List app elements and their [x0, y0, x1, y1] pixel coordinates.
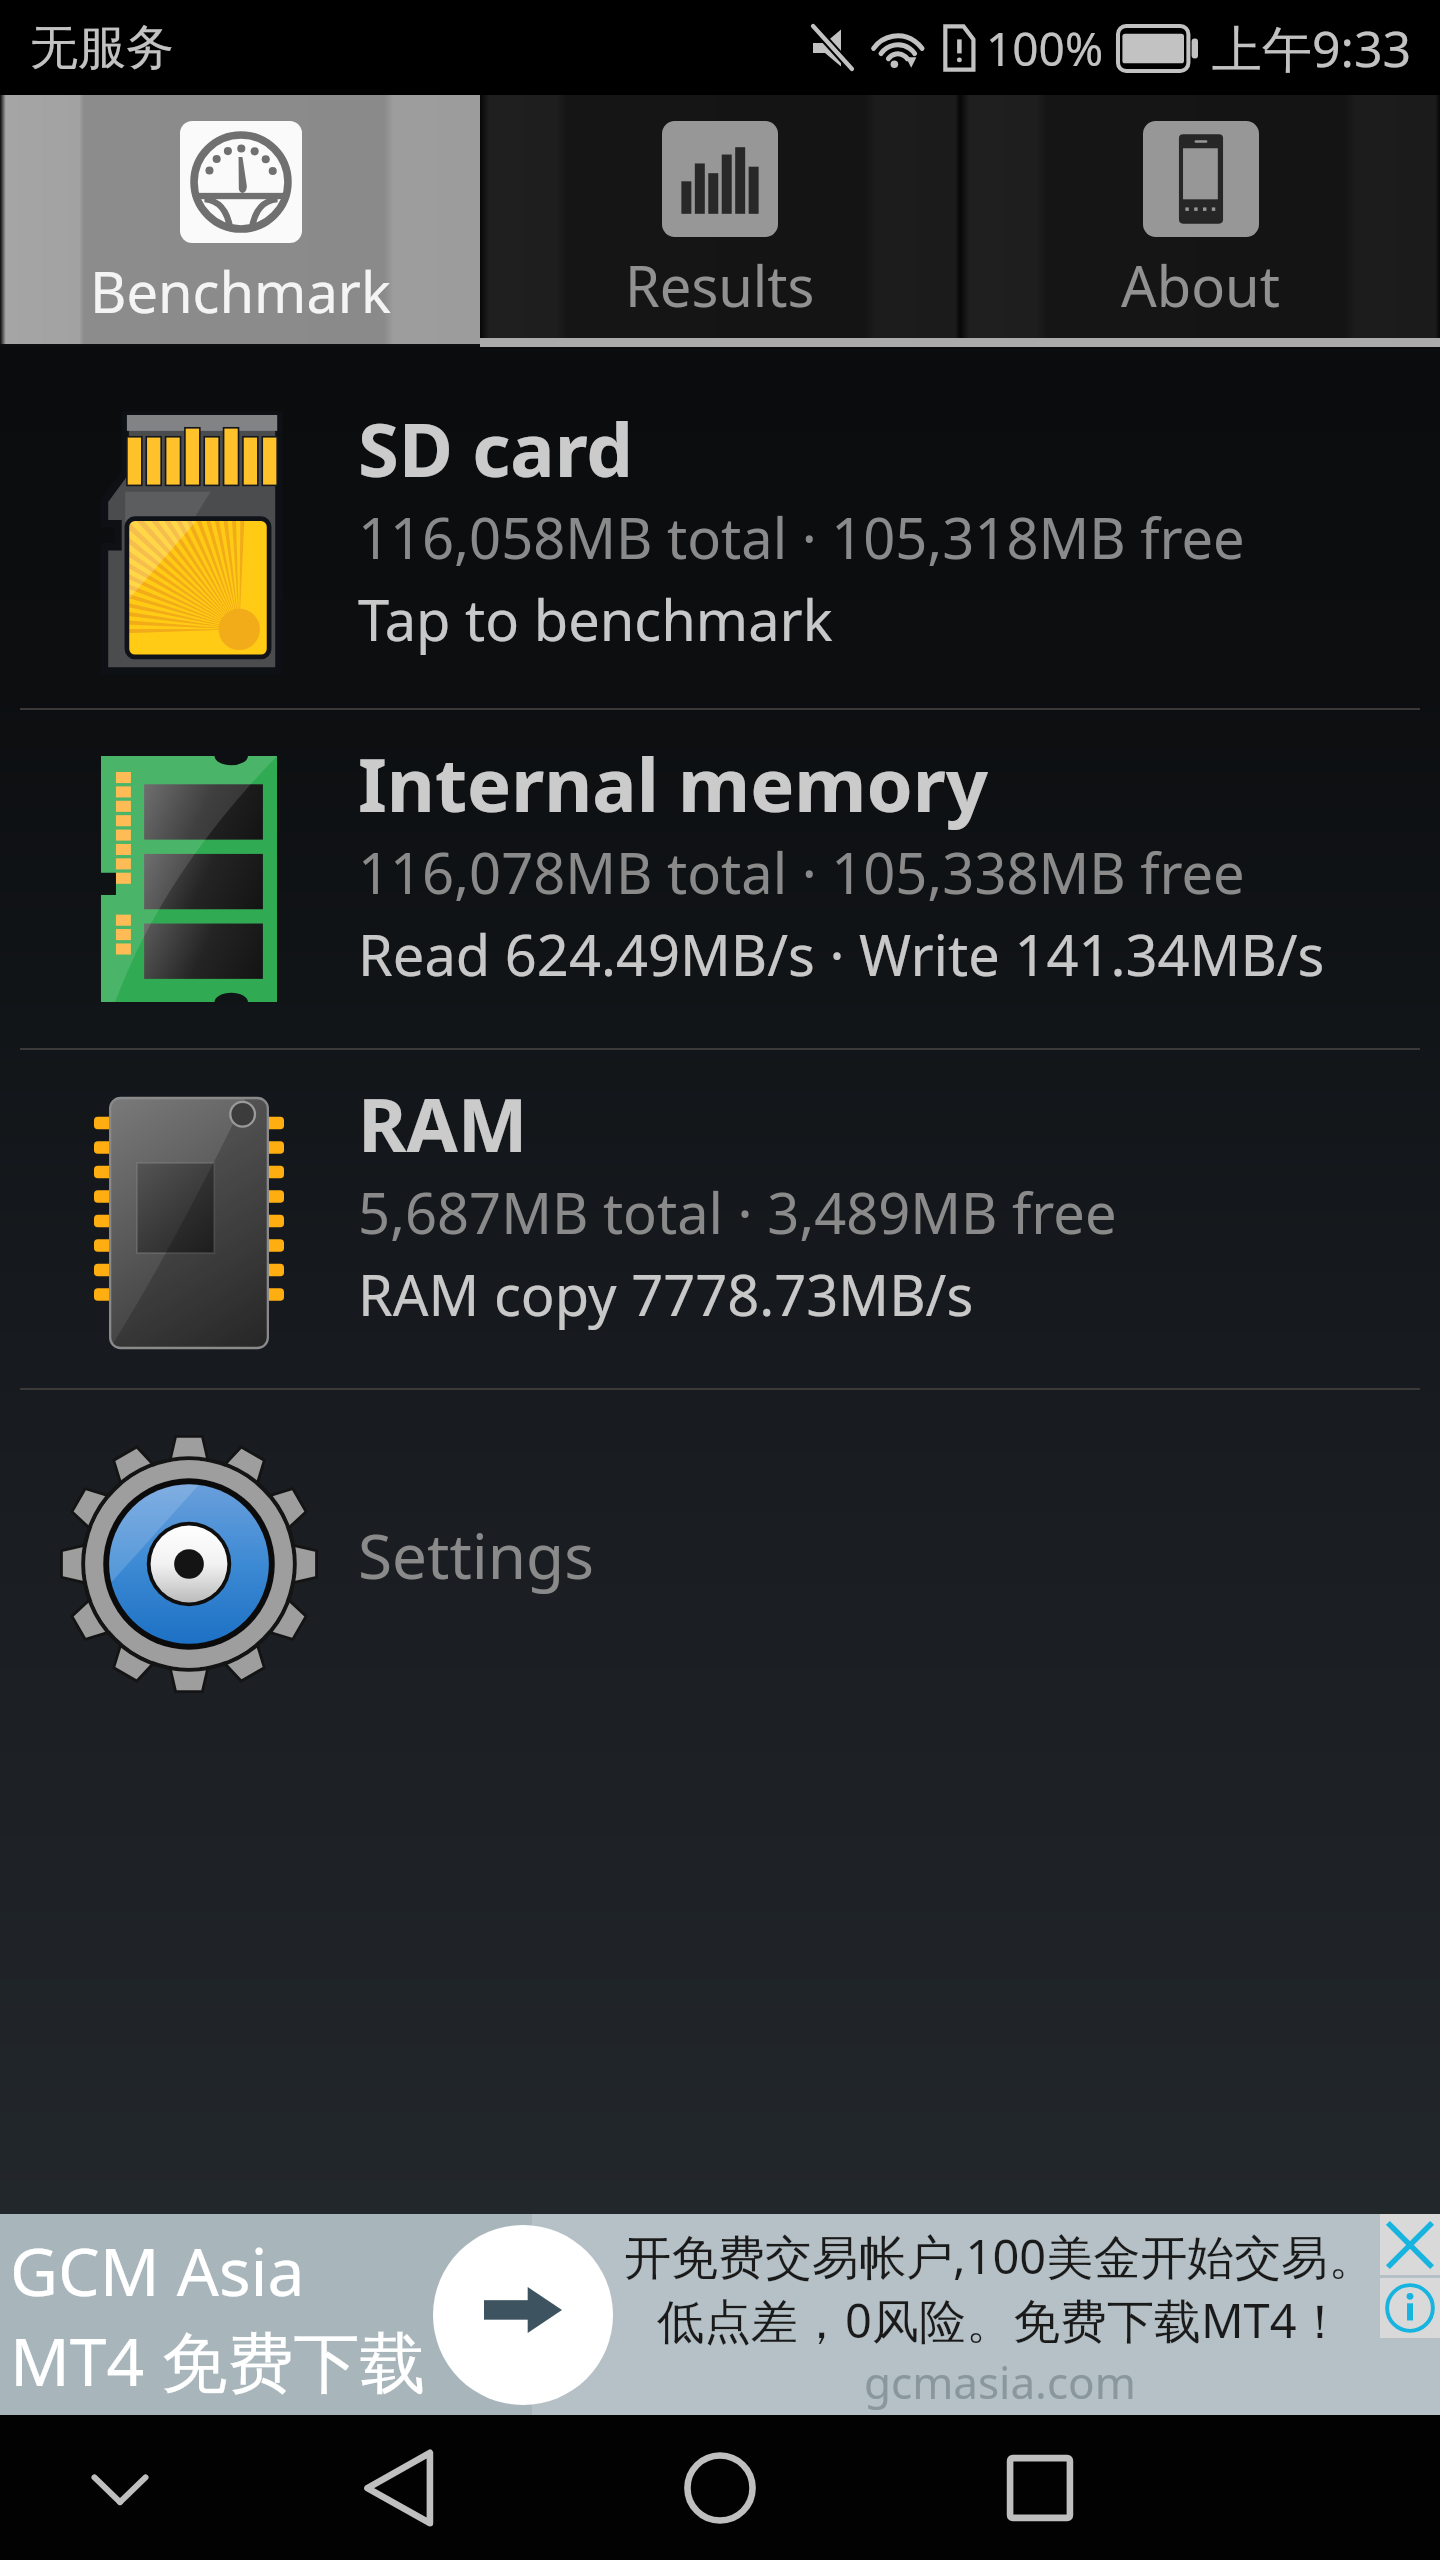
- staticText: Tap to benchmark: [358, 581, 833, 657]
- button[interactable]: Home: [660, 2428, 780, 2548]
- staticText: Internal memory: [358, 733, 989, 834]
- staticText: 开免费交易帐户,100美金开始交易。: [624, 2224, 1376, 2288]
- button[interactable]: RAM: [0, 1050, 1440, 1388]
- staticText: RAM: [358, 1073, 528, 1174]
- button[interactable]: GCM Asia advertisement: [0, 2214, 1440, 2415]
- staticText: 无服务: [30, 18, 174, 78]
- button[interactable]: SD card: [0, 347, 1440, 708]
- staticText: 5,687MB total · 3,489MB free: [358, 1174, 1117, 1250]
- staticText: SD card: [358, 398, 634, 499]
- staticText: Benchmark: [90, 253, 391, 329]
- button[interactable]: About: [960, 95, 1440, 344]
- staticText: 低点差，0风险。免费下载MT4！: [657, 2288, 1344, 2352]
- button[interactable]: Recents: [980, 2428, 1100, 2548]
- staticText: Read 624.49MB/s · Write 141.34MB/s: [358, 916, 1325, 992]
- staticText: 116,058MB total · 105,318MB free: [358, 499, 1245, 575]
- staticText: gcmasia.com: [864, 2352, 1136, 2412]
- staticText: 100%: [986, 17, 1104, 80]
- staticText: About: [1121, 247, 1280, 323]
- button[interactable]: Settings: [0, 1390, 1440, 1720]
- staticText: Settings: [358, 1513, 594, 1597]
- button[interactable]: Ad info: [1380, 2278, 1440, 2338]
- staticText: GCM Asia: [10, 2225, 305, 2315]
- button[interactable]: Results: [480, 95, 960, 344]
- button[interactable]: Benchmark: [0, 95, 480, 344]
- staticText: 116,078MB total · 105,338MB free: [358, 834, 1245, 910]
- button[interactable]: Back: [340, 2428, 460, 2548]
- button[interactable]: Close ad: [1380, 2214, 1440, 2275]
- button[interactable]: Internal memory: [0, 710, 1440, 1048]
- button[interactable]: Hide keyboard: [60, 2428, 180, 2548]
- staticText: Results: [625, 247, 815, 323]
- staticText: RAM copy 7778.73MB/s: [358, 1256, 974, 1332]
- staticText: 上午9:33: [1212, 14, 1412, 82]
- staticText: MT4 免费下载: [10, 2315, 426, 2405]
